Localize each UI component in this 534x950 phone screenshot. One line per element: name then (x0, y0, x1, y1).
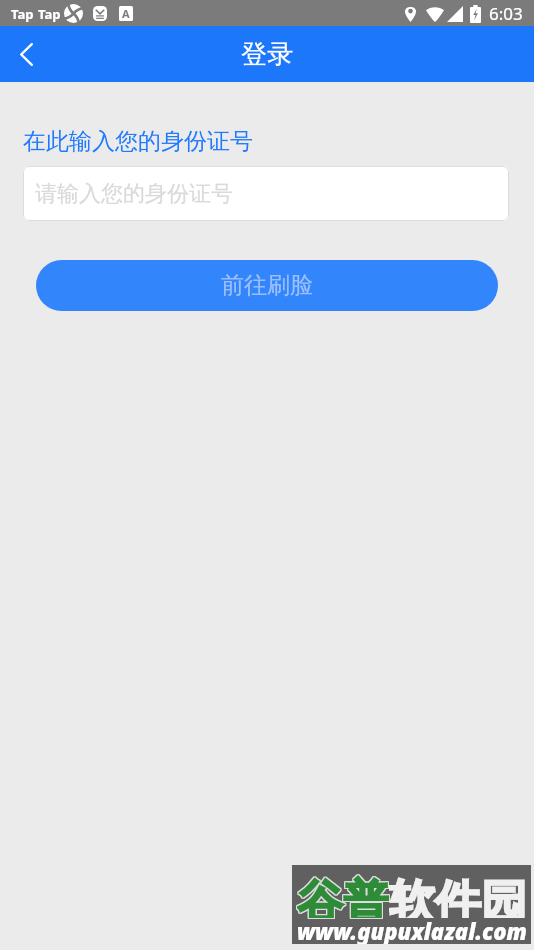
staticText: 谷普 (298, 873, 390, 917)
staticText: 谷普 (296, 874, 388, 918)
button[interactable]: 请输入您的身份证号 (23, 166, 509, 221)
button[interactable]: 前往刷脸 (36, 260, 498, 311)
staticText: 谷普 (298, 874, 390, 918)
staticText: Tap (11, 5, 34, 23)
staticText: Tap (38, 5, 61, 23)
staticText: 软件园 (389, 874, 527, 918)
staticText: A (122, 6, 130, 21)
staticText: 6:03 (489, 2, 523, 25)
staticText: 在此输入您的身份证号 (23, 127, 253, 156)
staticText: 谷普 (298, 875, 390, 919)
staticText: 前往刷脸 (221, 271, 313, 300)
staticText: 登录 (241, 38, 293, 71)
staticText: 谷普 (297, 874, 389, 918)
staticText: 谷普 (296, 875, 388, 919)
staticText: 谷普 (297, 875, 389, 919)
button[interactable]: Back (0, 28, 52, 80)
staticText: www.gupuxlazal.com (297, 916, 527, 944)
staticText: 谷普 (296, 873, 388, 917)
staticText: 请输入您的身份证号 (35, 180, 233, 208)
staticText: 谷普 (297, 873, 389, 917)
